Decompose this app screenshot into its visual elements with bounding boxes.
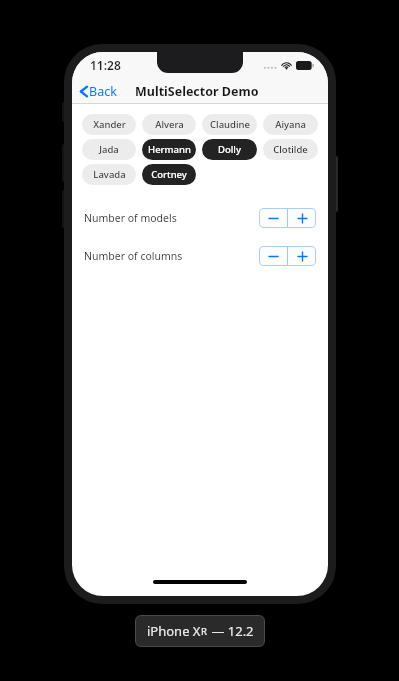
staticText: Clotilde [273, 143, 308, 156]
button[interactable]: Decrease [259, 208, 287, 228]
staticText: Number of columns [84, 249, 183, 263]
staticText: Xander [93, 118, 126, 131]
staticText: Back [89, 83, 117, 100]
button[interactable]: Xander [82, 114, 136, 135]
staticText: Cortney [151, 168, 187, 181]
button[interactable]: Hermann [142, 139, 196, 160]
staticText: Number of models [84, 211, 177, 225]
button[interactable]: iPhone X [135, 615, 265, 647]
button[interactable]: Increase [288, 208, 316, 228]
button[interactable]: Back [78, 81, 119, 102]
button[interactable]: Jada [82, 139, 136, 160]
staticText: Hermann [148, 143, 191, 156]
staticText: iPhone X [147, 622, 201, 640]
staticText: R [201, 625, 208, 638]
button[interactable]: Increase [288, 246, 316, 266]
staticText: Alvera [155, 118, 184, 131]
staticText: Claudine [210, 118, 250, 131]
button[interactable]: Dolly [202, 139, 257, 160]
staticText: Dolly [218, 143, 241, 156]
staticText: MultiSelector Demo [135, 83, 259, 100]
button[interactable]: Aiyana [263, 114, 318, 135]
staticText: — 12.2 [208, 622, 254, 640]
staticText: Jada [99, 143, 119, 156]
button[interactable]: Clotilde [263, 139, 318, 160]
staticText: Lavada [93, 168, 126, 181]
staticText: Aiyana [275, 118, 306, 131]
button[interactable]: Decrease [259, 246, 287, 266]
button[interactable]: Lavada [82, 164, 136, 185]
button[interactable]: Cortney [142, 164, 196, 185]
staticText: 11:28 [90, 57, 121, 73]
button[interactable]: Claudine [202, 114, 257, 135]
button[interactable]: Alvera [142, 114, 196, 135]
